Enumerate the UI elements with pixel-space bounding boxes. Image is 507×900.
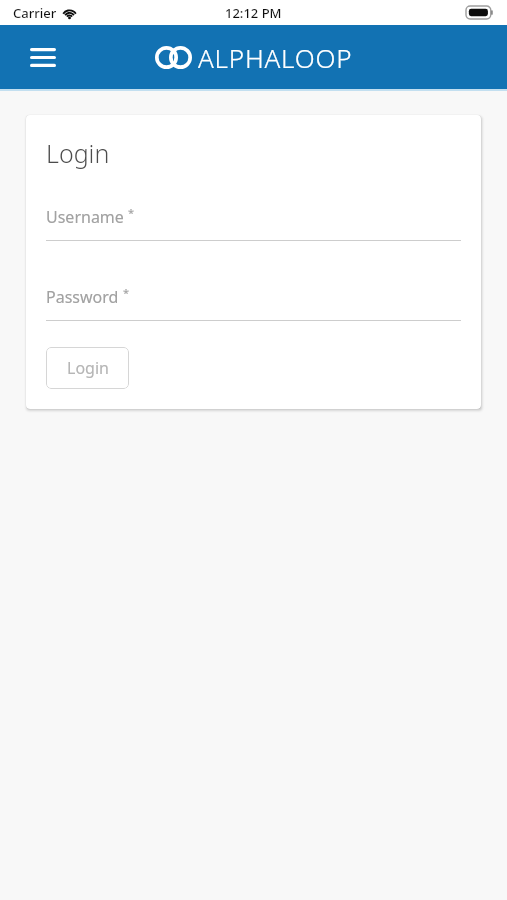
staticText: ALPHALOOP [198, 40, 353, 75]
staticText: 12:12 PM [225, 4, 282, 22]
button[interactable]: Open navigation menu [21, 35, 65, 79]
staticText: * [123, 285, 130, 300]
staticText: Login [67, 357, 109, 379]
button[interactable]: Password [46, 286, 461, 321]
staticText: Carrier [13, 4, 57, 22]
staticText: Username [46, 206, 124, 228]
button[interactable]: Username [46, 206, 461, 241]
staticText: Login [46, 136, 110, 170]
staticText: * [128, 205, 135, 220]
staticText: Password [46, 286, 119, 308]
button[interactable]: Login [46, 347, 129, 389]
